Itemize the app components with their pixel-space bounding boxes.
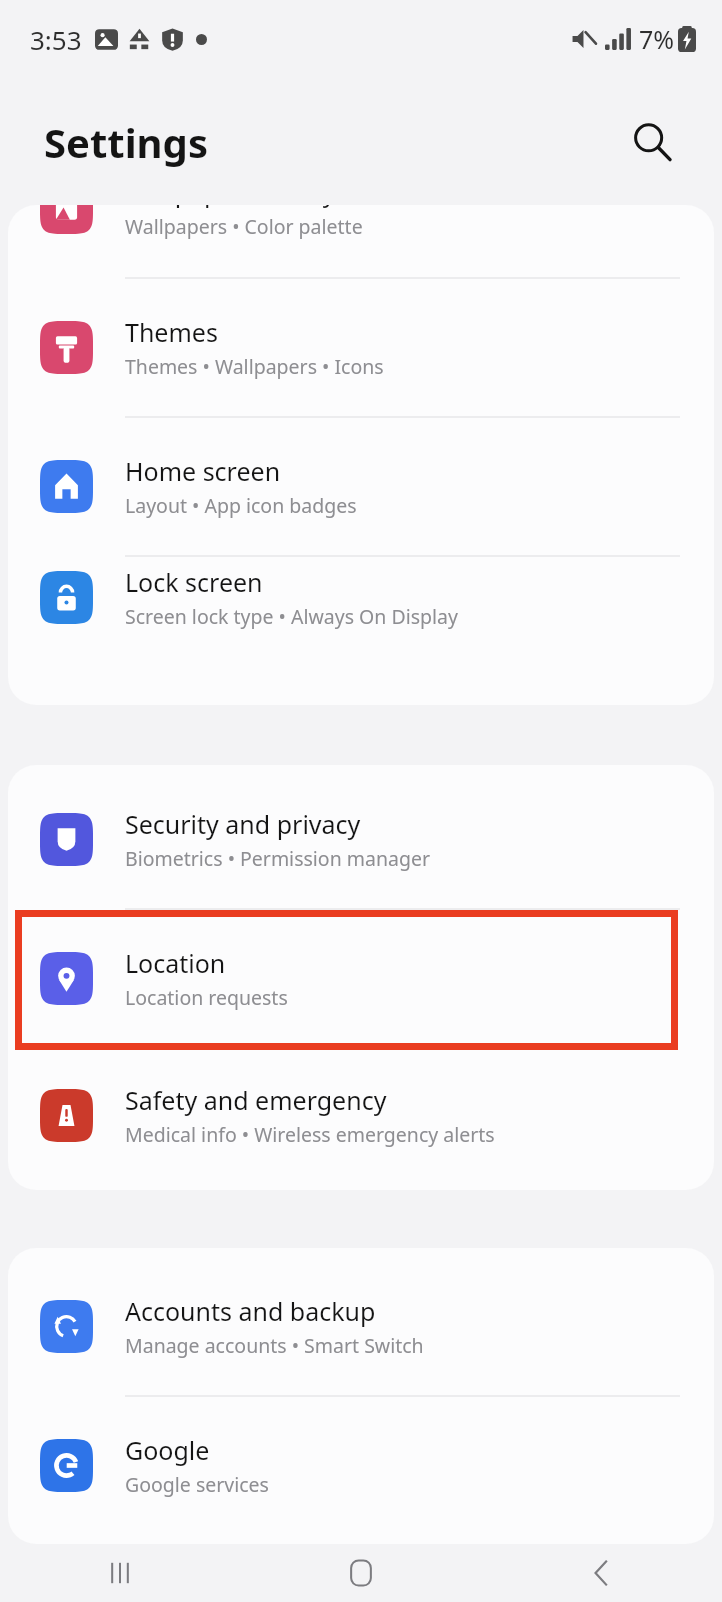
staticText: Google — [125, 1433, 210, 1467]
staticText: Wallpapers • Color palette — [125, 213, 363, 240]
button[interactable]: Accounts and backup — [8, 1258, 714, 1395]
staticText: Wallpaper and style — [125, 205, 357, 209]
staticText: Themes • Wallpapers • Icons — [125, 353, 384, 380]
staticText: 7% — [639, 22, 675, 56]
button[interactable]: Search — [622, 112, 682, 172]
staticText: Biometrics • Permission manager — [125, 845, 430, 872]
button[interactable]: Back — [481, 1544, 722, 1602]
staticText: Medical info • Wireless emergency alerts — [125, 1121, 495, 1148]
button[interactable]: Safety and emergency — [8, 1047, 714, 1184]
button[interactable]: Location — [8, 910, 714, 1047]
staticText: Google services — [125, 1471, 269, 1498]
button[interactable]: Recent apps — [0, 1544, 240, 1602]
button[interactable]: Themes — [8, 279, 714, 416]
staticText: Security and privacy — [125, 807, 361, 841]
staticText: Accounts and backup — [125, 1294, 376, 1328]
button[interactable]: Security and privacy — [8, 771, 714, 908]
staticText: Manage accounts • Smart Switch — [125, 1332, 424, 1359]
button[interactable]: Google — [8, 1397, 714, 1534]
button[interactable]: Wallpaper and style — [8, 205, 714, 277]
button[interactable]: Home screen — [8, 418, 714, 555]
staticText: Layout • App icon badges — [125, 492, 357, 519]
staticText: Location requests — [125, 984, 288, 1011]
staticText: 3:53 — [30, 22, 82, 57]
staticText: Home screen — [125, 454, 281, 488]
staticText: Settings — [44, 115, 208, 169]
staticText: Themes — [125, 315, 218, 349]
staticText: Lock screen — [125, 565, 263, 599]
staticText: Location — [125, 946, 226, 980]
staticText: Safety and emergency — [125, 1083, 387, 1117]
button[interactable]: Home — [240, 1544, 481, 1602]
button[interactable]: Lock screen — [8, 557, 714, 637]
staticText: Screen lock type • Always On Display — [125, 603, 458, 630]
